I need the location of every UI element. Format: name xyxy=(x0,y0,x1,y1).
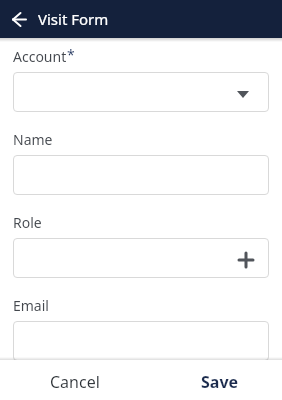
staticText: Name xyxy=(13,130,53,149)
staticText: * xyxy=(67,45,75,64)
button[interactable]: Save xyxy=(141,360,282,400)
button[interactable] xyxy=(13,72,269,112)
button[interactable] xyxy=(0,0,38,38)
button[interactable] xyxy=(13,238,269,278)
button[interactable] xyxy=(13,321,269,361)
button[interactable]: Cancel xyxy=(0,360,141,400)
staticText: Cancel xyxy=(50,371,100,393)
staticText: Email xyxy=(13,296,49,315)
staticText: Visit Form xyxy=(38,9,109,29)
button[interactable] xyxy=(13,155,269,195)
staticText: Role xyxy=(13,213,42,232)
staticText: Save xyxy=(201,371,239,393)
staticText: Account xyxy=(13,47,67,66)
